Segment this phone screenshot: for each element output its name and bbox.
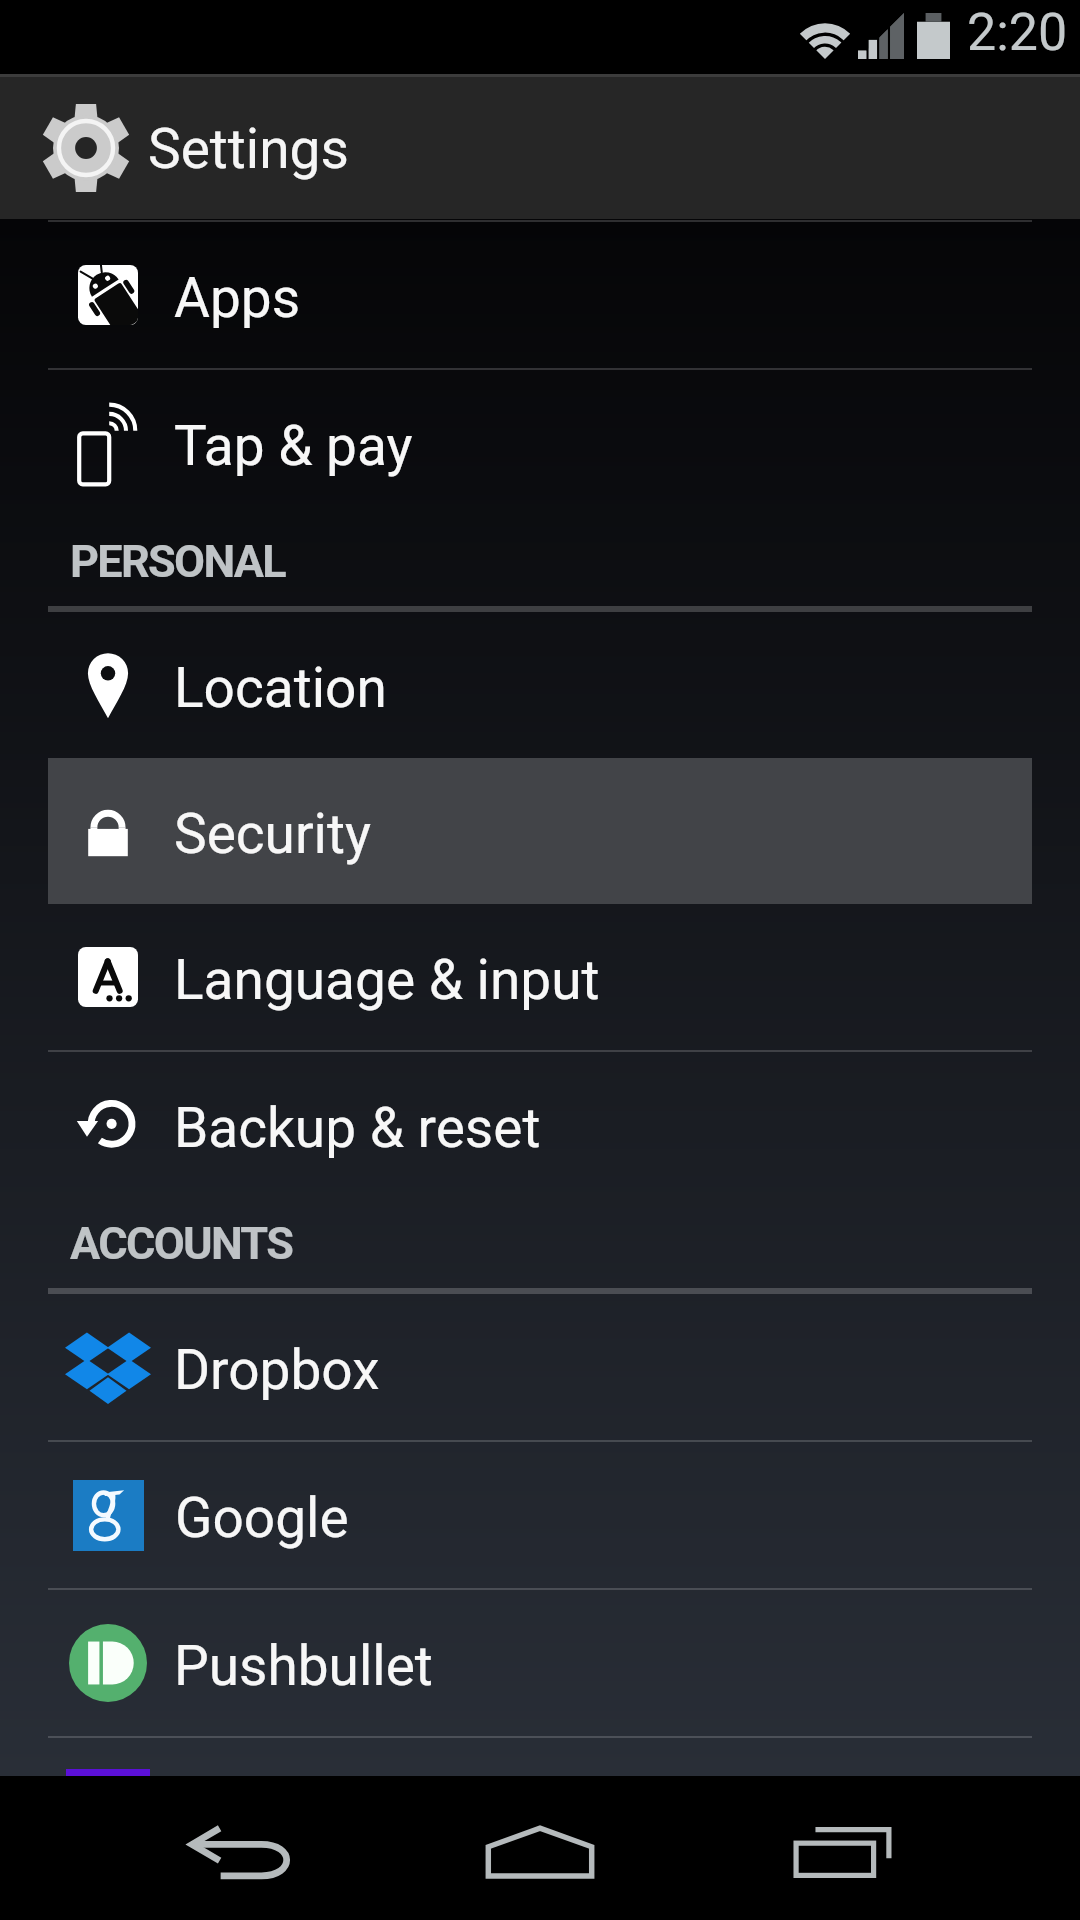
button[interactable]: Backup & reset bbox=[0, 1052, 1080, 1198]
button[interactable]: Security bbox=[48, 758, 1032, 904]
staticText: ACCOUNTS bbox=[70, 1217, 293, 1270]
button[interactable]: Google bbox=[0, 1442, 1080, 1588]
staticText: Settings bbox=[148, 117, 349, 181]
staticText: Pushbullet bbox=[174, 1634, 433, 1698]
staticText: Google bbox=[175, 1486, 349, 1550]
button[interactable]: Back bbox=[159, 1776, 319, 1920]
button[interactable]: Language & input bbox=[0, 904, 1080, 1050]
staticText: Backup & reset bbox=[174, 1096, 541, 1160]
staticText: Tap & pay bbox=[174, 414, 413, 478]
button[interactable]: Tap & pay bbox=[0, 370, 1080, 516]
staticText: Security bbox=[174, 802, 371, 866]
staticText: 2:20 bbox=[967, 2, 1068, 63]
staticText: Language & input bbox=[174, 948, 600, 1012]
staticText: Location bbox=[174, 656, 387, 720]
button[interactable]: Location bbox=[0, 612, 1080, 758]
button[interactable]: Pushbullet bbox=[0, 1590, 1080, 1736]
button[interactable]: Dropbox bbox=[0, 1294, 1080, 1440]
staticText: Apps bbox=[174, 266, 301, 330]
button[interactable]: Recent apps bbox=[763, 1776, 923, 1920]
staticText: PERSONAL bbox=[70, 535, 286, 588]
button[interactable]: Settings bbox=[0, 77, 1080, 219]
staticText: Dropbox bbox=[174, 1338, 380, 1402]
button[interactable]: Apps bbox=[0, 222, 1080, 368]
button[interactable]: Home bbox=[460, 1776, 620, 1920]
